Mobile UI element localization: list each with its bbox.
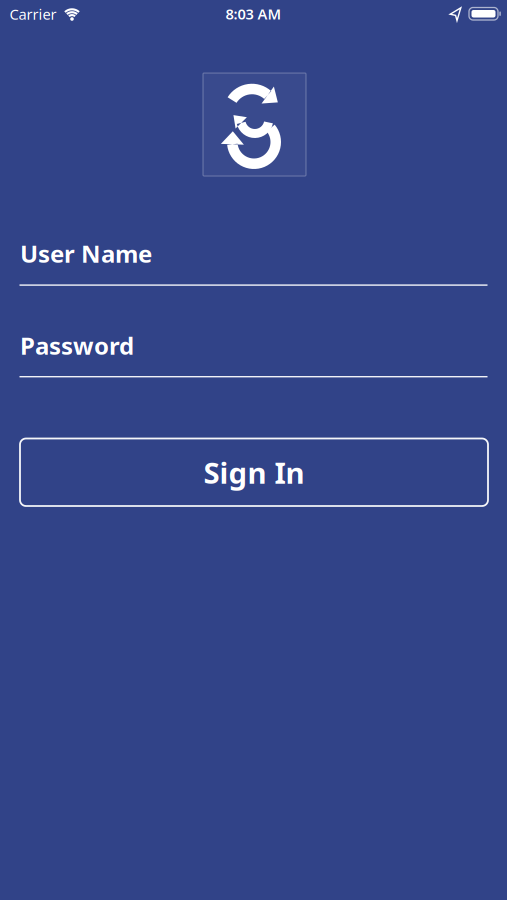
button[interactable]: Sign In <box>20 438 488 506</box>
staticText: Carrier <box>9 4 56 24</box>
staticText: Password <box>20 329 134 361</box>
staticText: 8:03 AM <box>225 4 281 24</box>
staticText: User Name <box>20 237 152 269</box>
button[interactable]: User Name <box>19 237 487 286</box>
button[interactable]: Password <box>19 329 487 377</box>
staticText: Sign In <box>203 453 304 492</box>
